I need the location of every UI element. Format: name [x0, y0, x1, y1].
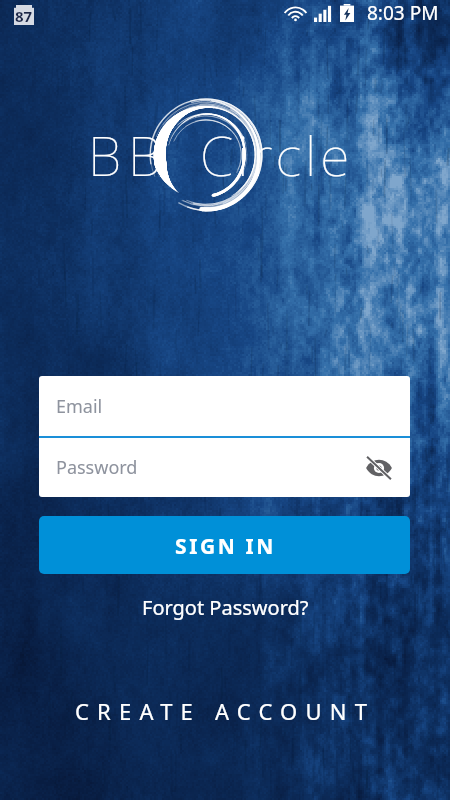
staticText: Forgot Password?	[142, 594, 309, 621]
staticText: Circle	[200, 118, 354, 192]
staticText: 87	[15, 6, 33, 26]
button[interactable]: CREATE ACCOUNT	[0, 688, 450, 734]
staticText: 8:03 PM	[367, 0, 439, 26]
staticText: CREATE ACCOUNT	[75, 696, 376, 726]
button[interactable]: Show password	[362, 451, 396, 485]
button[interactable]: SIGN IN	[39, 516, 410, 574]
button[interactable]: Forgot Password?	[128, 590, 323, 625]
staticText: Email	[56, 394, 103, 419]
staticText: SIGN IN	[175, 532, 276, 561]
staticText: Password	[56, 455, 138, 480]
staticText: BB	[88, 118, 169, 192]
button[interactable]: Email	[39, 376, 410, 436]
button[interactable]: Password	[39, 438, 410, 497]
